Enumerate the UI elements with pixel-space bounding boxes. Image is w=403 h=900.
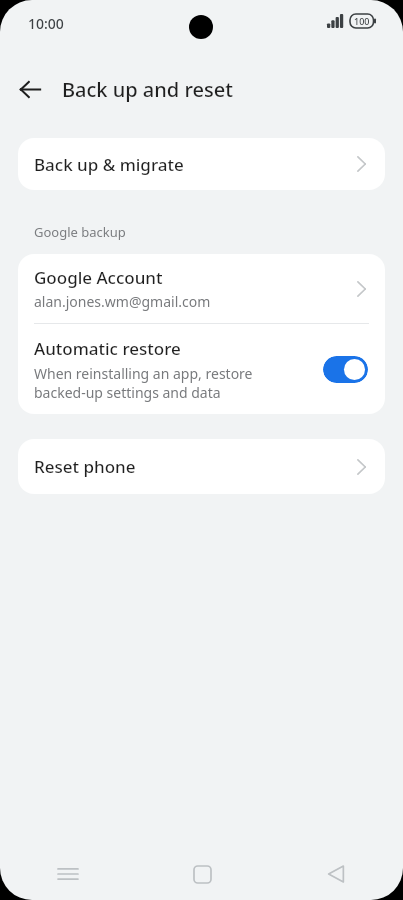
button[interactable]: Back (269, 848, 403, 900)
staticText: alan.jones.wm@gmail.com (34, 292, 211, 311)
staticText: Back up & migrate (34, 153, 184, 176)
button[interactable]: Back (10, 69, 50, 109)
staticText: 10:00 (28, 14, 64, 33)
button[interactable]: Recent apps (0, 848, 135, 900)
button[interactable]: Automatic restore (18, 324, 385, 414)
staticText: When reinstalling an app, restore backed… (34, 364, 284, 402)
button[interactable]: Reset phone (18, 439, 385, 494)
button[interactable]: Automatic restore toggle (323, 356, 368, 383)
staticText: Back up and reset (62, 76, 233, 103)
staticText: Automatic restore (34, 337, 181, 360)
staticText: Reset phone (34, 455, 136, 478)
button[interactable]: Back up & migrate (18, 138, 385, 190)
staticText: Google Account (34, 266, 163, 289)
button[interactable]: Home (135, 848, 269, 900)
staticText: 100 (354, 15, 370, 27)
button[interactable]: Google Account (18, 254, 385, 323)
staticText: Google backup (34, 223, 126, 241)
